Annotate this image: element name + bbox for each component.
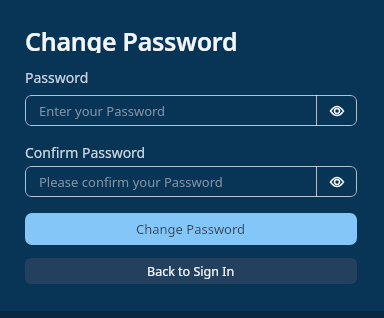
- button[interactable]: Change Password: [25, 213, 357, 245]
- button[interactable]: Please confirm your Password: [25, 166, 357, 197]
- staticText: Please confirm your Password: [39, 173, 223, 191]
- staticText: Enter your Password: [39, 102, 166, 120]
- staticText: Change Password: [25, 24, 238, 53]
- staticText: Change Password: [136, 220, 246, 238]
- button[interactable]: [317, 95, 357, 126]
- button[interactable]: Back to Sign In: [25, 258, 357, 284]
- staticText: Confirm Password: [25, 143, 146, 162]
- staticText: Back to Sign In: [147, 263, 235, 280]
- staticText: Password: [25, 68, 89, 87]
- button[interactable]: Enter your Password: [25, 95, 357, 126]
- button[interactable]: [317, 166, 357, 197]
